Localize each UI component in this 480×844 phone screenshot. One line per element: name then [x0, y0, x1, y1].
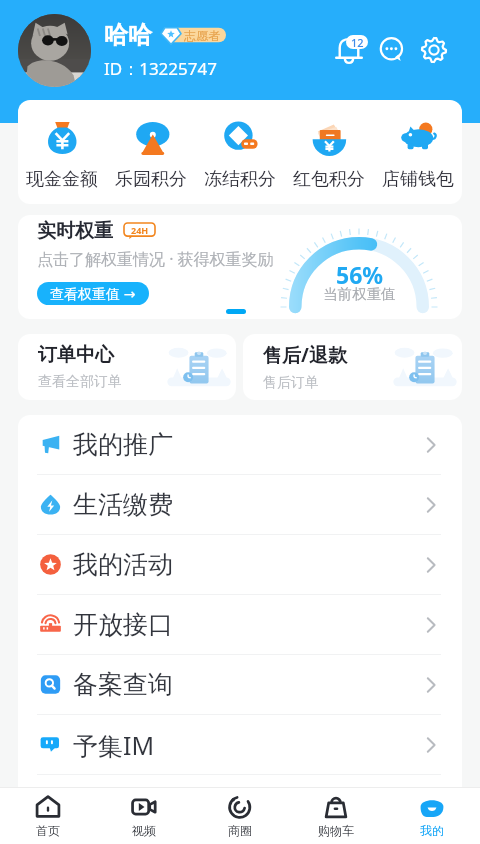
staticText: 查看全部订单	[38, 373, 122, 391]
staticText: 予集IM	[73, 728, 155, 762]
staticText: 12	[351, 35, 364, 49]
staticText: 商圈	[228, 823, 252, 838]
button[interactable]: Messages	[377, 35, 407, 65]
staticText: 视频	[132, 823, 156, 838]
button[interactable]: 冻结积分	[195, 118, 284, 191]
button[interactable]: 现金金额	[18, 118, 106, 191]
button[interactable]: Notifications	[333, 34, 365, 66]
staticText: 生活缴费	[73, 489, 173, 520]
staticText: 查看权重值 →	[50, 284, 136, 303]
button[interactable]: 予集IM	[18, 715, 462, 774]
button[interactable]: 查看权重值 →	[37, 282, 149, 305]
staticText: 首页	[36, 823, 60, 838]
staticText: 订单中心	[38, 343, 114, 367]
staticText: ID：13225747	[104, 57, 217, 80]
staticText: 乐园积分	[115, 168, 187, 191]
button[interactable]: 店铺钱包	[373, 118, 462, 191]
button[interactable]: 红包积分	[284, 118, 373, 191]
button[interactable]: 生活缴费	[18, 475, 462, 534]
button[interactable]: 开放接口	[18, 595, 462, 654]
button[interactable]: 首页	[0, 788, 96, 844]
staticText: 我的推广	[73, 429, 173, 460]
button[interactable]: 订单中心	[18, 334, 236, 400]
staticText: 当前权重值	[323, 285, 396, 303]
staticText: 购物车	[318, 823, 354, 838]
button[interactable]: 乐园积分	[106, 118, 195, 191]
staticText: 冻结积分	[204, 168, 276, 191]
button[interactable]: 我的推广	[18, 415, 462, 474]
button[interactable]: Settings	[419, 35, 449, 65]
staticText: 24H	[131, 224, 149, 236]
staticText: 备案查询	[73, 669, 173, 700]
staticText: 红包积分	[293, 168, 365, 191]
staticText: 56%	[336, 259, 384, 290]
button[interactable]: 实时权重	[18, 215, 462, 319]
button[interactable]: 备案查询	[18, 655, 462, 714]
staticText: 开放接口	[73, 609, 173, 640]
staticText: 实时权重	[37, 219, 113, 243]
button[interactable]: 我的活动	[18, 535, 462, 594]
staticText: 我的活动	[73, 549, 173, 580]
button[interactable]: 视频	[96, 788, 192, 844]
staticText: 店铺钱包	[382, 168, 454, 191]
button[interactable]: 售后/退款	[243, 334, 462, 400]
button[interactable]: Avatar	[18, 14, 91, 87]
button[interactable]: 购物车	[288, 788, 384, 844]
button[interactable]: 商圈	[192, 788, 288, 844]
staticText: 售后/退款	[263, 342, 347, 368]
button[interactable]: 我的	[384, 788, 480, 844]
staticText: 点击了解权重情况 · 获得权重奖励	[37, 248, 274, 270]
staticText: 我的	[420, 823, 444, 838]
staticText: 哈哈	[104, 20, 152, 50]
staticText: 现金金额	[26, 168, 98, 191]
staticText: 志愿者	[184, 28, 220, 43]
staticText: 售后订单	[263, 374, 319, 392]
